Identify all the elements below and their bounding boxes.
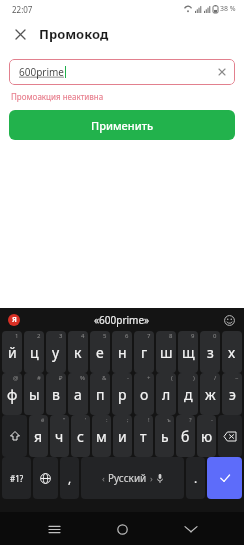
button[interactable]: п <box>90 373 110 415</box>
staticText: м <box>96 427 107 446</box>
button[interactable]: и <box>113 415 132 457</box>
staticText: я <box>34 427 43 446</box>
button[interactable]: е <box>90 331 110 373</box>
button[interactable]: Yandex <box>8 314 20 326</box>
staticText: к <box>74 343 82 362</box>
button[interactable]: г <box>134 331 154 373</box>
button[interactable]: Clear <box>215 65 229 79</box>
button[interactable]: ю <box>197 415 216 457</box>
staticText: л <box>162 385 171 404</box>
button[interactable] <box>2 415 27 457</box>
staticText: 6 <box>125 332 129 340</box>
button[interactable]: ‹ <box>81 457 184 499</box>
button[interactable]: т <box>134 415 153 457</box>
staticText: " <box>63 416 66 424</box>
button[interactable]: д <box>178 373 198 415</box>
staticText: @ <box>13 374 19 382</box>
staticText: ₽ <box>59 374 63 382</box>
staticText: ц <box>30 343 39 362</box>
staticText: 2 <box>37 332 41 340</box>
staticText: : <box>106 416 108 424</box>
staticText: г <box>141 343 148 362</box>
button[interactable]: з <box>200 331 220 373</box>
button[interactable]: б <box>176 415 195 457</box>
button[interactable]: ь <box>155 415 174 457</box>
staticText: т <box>140 427 147 446</box>
button[interactable]: . <box>186 457 205 499</box>
staticText: ? <box>189 416 192 424</box>
staticText: п <box>96 385 105 404</box>
staticText: 1 <box>15 332 19 340</box>
staticText: б <box>181 427 190 446</box>
button[interactable]: ы <box>24 373 44 415</box>
button[interactable]: #1? <box>2 457 31 499</box>
staticText: Промоакция неактивна <box>11 91 104 102</box>
button[interactable] <box>218 415 242 457</box>
staticText: / <box>214 374 217 382</box>
staticText: Применить <box>91 118 154 133</box>
staticText: з <box>207 343 214 362</box>
button[interactable]: л <box>156 373 176 415</box>
staticText: ) <box>193 374 195 382</box>
button[interactable] <box>207 457 242 499</box>
staticText: - <box>127 374 129 382</box>
button[interactable]: э <box>222 373 242 415</box>
staticText: ч <box>55 427 64 446</box>
staticText: & <box>102 374 107 382</box>
button[interactable]: Emoji <box>222 313 236 327</box>
button[interactable]: Recents <box>39 514 69 544</box>
button[interactable]: в <box>46 373 66 415</box>
staticText: . <box>194 470 198 486</box>
staticText: 38 % <box>220 4 236 14</box>
button[interactable]: с <box>71 415 90 457</box>
staticText: р <box>118 385 127 404</box>
staticText: ф <box>7 385 18 404</box>
button[interactable]: 600prime <box>9 59 235 85</box>
button[interactable]: ф <box>2 373 22 415</box>
staticText: , <box>68 470 72 486</box>
button[interactable]: а <box>68 373 88 415</box>
staticText: «600prime» <box>94 313 150 327</box>
staticText: Промокод <box>39 25 109 43</box>
staticText: % <box>80 374 85 382</box>
staticText: 8 <box>169 332 173 340</box>
staticText: а <box>74 385 82 404</box>
button[interactable]: ш <box>156 331 176 373</box>
button[interactable]: ч <box>50 415 69 457</box>
staticText: 5 <box>103 332 107 340</box>
button[interactable]: м <box>92 415 111 457</box>
button[interactable]: Back <box>176 514 206 544</box>
button[interactable]: Close <box>10 24 30 44</box>
button[interactable]: щ <box>178 331 198 373</box>
staticText: 7 <box>147 332 151 340</box>
button[interactable]: х <box>222 331 242 373</box>
button[interactable]: ц <box>24 331 44 373</box>
button[interactable]: Применить <box>9 110 235 140</box>
staticText: - <box>211 416 213 424</box>
staticText: в <box>52 385 60 404</box>
staticText: д <box>184 385 193 404</box>
button[interactable]: о <box>134 373 154 415</box>
staticText: 9 <box>191 332 195 340</box>
button[interactable]: , <box>60 457 79 499</box>
staticText: › <box>150 472 153 484</box>
staticText: #1? <box>10 473 24 484</box>
button[interactable]: й <box>2 331 22 373</box>
staticText: 22:07 <box>12 4 33 15</box>
button[interactable] <box>33 457 58 499</box>
staticText: ж <box>205 385 216 404</box>
staticText: 3 <box>59 332 63 340</box>
staticText: ! <box>148 416 150 424</box>
staticText: ' <box>85 416 87 424</box>
staticText: х <box>228 343 236 362</box>
staticText: э <box>229 385 236 404</box>
button[interactable]: Home <box>107 514 137 544</box>
button[interactable]: р <box>112 373 132 415</box>
button[interactable]: н <box>112 331 132 373</box>
staticText: н <box>118 343 127 362</box>
button[interactable]: к <box>68 331 88 373</box>
button[interactable]: у <box>46 331 66 373</box>
button[interactable]: ж <box>200 373 220 415</box>
button[interactable]: я <box>29 415 48 457</box>
staticText: ш <box>160 343 173 362</box>
